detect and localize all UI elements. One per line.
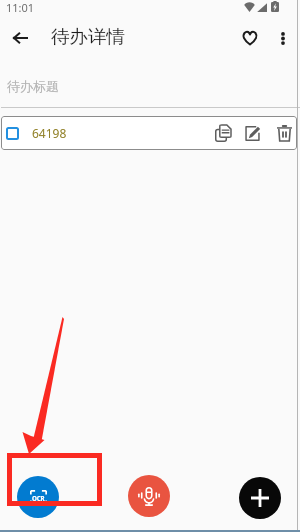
- staticText: OCR: [32, 494, 45, 502]
- staticText: 待办标题: [7, 78, 59, 94]
- staticText: 64198: [32, 125, 67, 141]
- button[interactable]: Toggle done: [6, 127, 19, 140]
- button[interactable]: Edit: [240, 116, 264, 150]
- button[interactable]: Delete: [272, 116, 296, 150]
- button[interactable]: Toggle done: [1, 116, 297, 150]
- button[interactable]: Copy: [211, 116, 235, 150]
- button[interactable]: Favorite: [232, 20, 268, 56]
- button[interactable]: Back: [2, 20, 38, 56]
- button[interactable]: Voice input: [128, 475, 170, 517]
- button[interactable]: OCR scan: [17, 476, 59, 518]
- button[interactable]: More options: [268, 23, 298, 53]
- staticText: 待办详情: [51, 25, 125, 48]
- staticText: 11:01: [6, 0, 35, 15]
- button[interactable]: Add: [239, 477, 281, 519]
